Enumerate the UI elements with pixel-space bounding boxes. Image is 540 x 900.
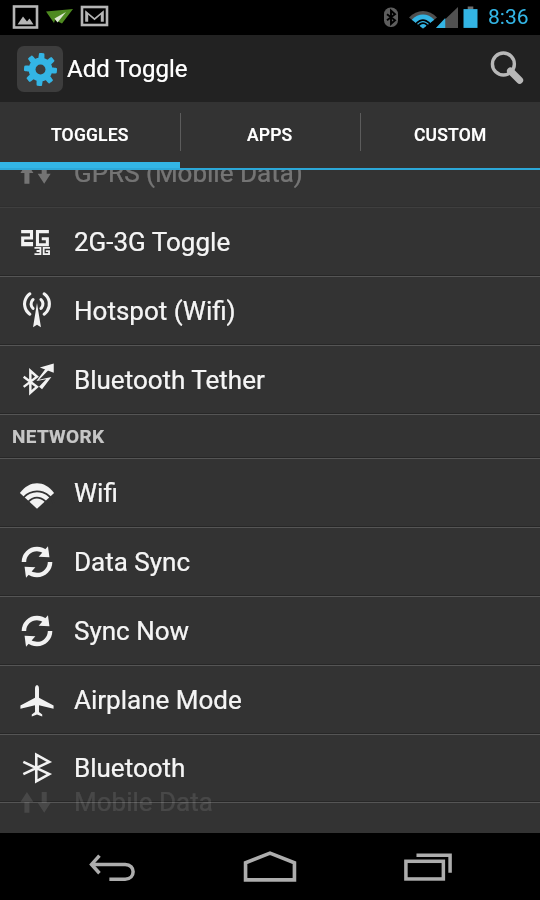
button[interactable]: Back <box>33 833 191 900</box>
staticText: Wifi <box>74 478 118 508</box>
staticText: 8:36 <box>488 5 529 30</box>
button[interactable]: Airplane Mode <box>0 666 540 735</box>
staticText: Hotspot (Wifi) <box>74 296 236 326</box>
staticText: Sync Now <box>74 616 190 646</box>
button[interactable]: 2G-3G Toggle <box>0 208 540 277</box>
button[interactable]: Recent apps <box>349 833 507 900</box>
button[interactable]: APPS <box>180 102 360 162</box>
staticText: Data Sync <box>74 547 191 577</box>
button[interactable]: TOGGLES <box>0 102 180 162</box>
staticText: TOGGLES <box>51 125 129 146</box>
button[interactable]: Search <box>473 35 540 102</box>
staticText: APPS <box>247 125 293 146</box>
button[interactable]: Data Sync <box>0 528 540 597</box>
button[interactable]: CUSTOM <box>360 102 540 162</box>
button[interactable]: Hotspot (Wifi) <box>0 277 540 346</box>
staticText: 2G-3G Toggle <box>74 227 231 257</box>
staticText: Mobile Data <box>74 787 213 817</box>
button[interactable]: GPRS (Mobile Data) <box>0 170 540 208</box>
staticText: NETWORK <box>12 425 105 447</box>
button[interactable]: Mobile Data <box>0 768 540 833</box>
button[interactable]: Wifi <box>0 459 540 528</box>
button[interactable]: Up <box>17 46 63 92</box>
button[interactable]: Bluetooth <box>0 734 540 803</box>
staticText: Add Toggle <box>67 55 188 83</box>
staticText: Airplane Mode <box>74 685 242 715</box>
button[interactable]: Bluetooth Tether <box>0 346 540 415</box>
staticText: Bluetooth Tether <box>74 365 265 395</box>
button[interactable]: Home <box>191 833 349 900</box>
staticText: CUSTOM <box>414 125 487 146</box>
button[interactable]: Sync Now <box>0 597 540 666</box>
staticText: Bluetooth <box>74 753 186 783</box>
staticText: GPRS (Mobile Data) <box>74 170 303 188</box>
